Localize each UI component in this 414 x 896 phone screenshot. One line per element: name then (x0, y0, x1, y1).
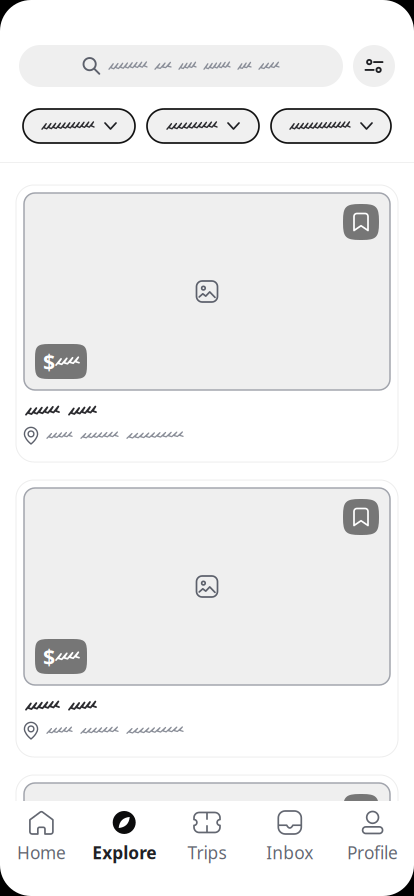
staticText: Inbox (266, 841, 313, 864)
button[interactable]: Save (343, 204, 379, 240)
button[interactable]: Trips (166, 801, 248, 868)
button[interactable]: Filters (353, 45, 395, 87)
button[interactable]: Profile (331, 801, 414, 868)
button[interactable]: Save (343, 499, 379, 535)
staticText: Explore (92, 841, 156, 864)
button[interactable]: Inbox (248, 801, 331, 868)
button[interactable] (19, 45, 343, 87)
button[interactable] (271, 109, 391, 143)
staticText: Trips (187, 841, 226, 864)
button[interactable] (23, 109, 135, 143)
staticText: Home (17, 841, 66, 864)
staticText: Profile (347, 841, 398, 864)
button[interactable]: Home (0, 801, 83, 868)
button[interactable]: Explore (83, 801, 166, 868)
button[interactable]: Save (343, 794, 379, 830)
button[interactable] (147, 109, 259, 143)
staticText: $ (43, 642, 55, 671)
staticText: $ (43, 347, 55, 376)
